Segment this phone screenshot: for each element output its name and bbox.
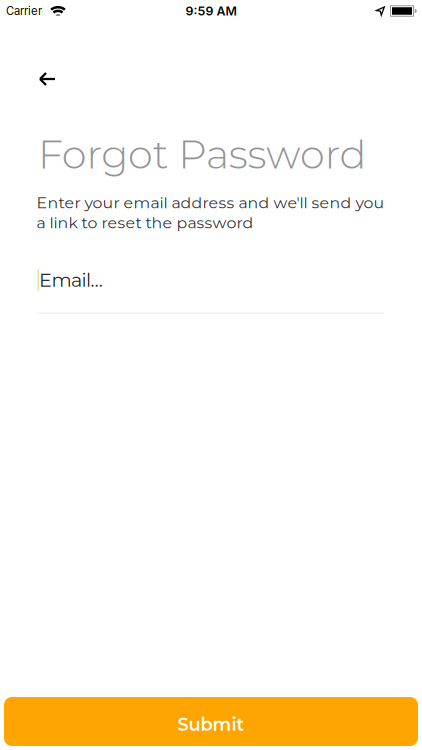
button[interactable]: Email (37, 268, 103, 291)
staticText: Submit (177, 714, 244, 735)
staticText: a link to reset the password (36, 213, 253, 232)
staticText: Email… (39, 268, 103, 291)
button[interactable]: Back (39, 72, 55, 86)
button[interactable]: Submit (4, 697, 418, 746)
staticText: Enter your email address and we'll send … (36, 193, 384, 212)
staticText: 9:59 AM (185, 3, 236, 18)
staticText: Forgot Password (38, 130, 366, 178)
staticText: Carrier (6, 4, 42, 18)
